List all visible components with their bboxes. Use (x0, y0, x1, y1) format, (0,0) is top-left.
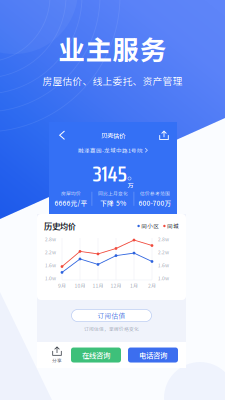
staticText: 9月 (58, 282, 66, 289)
staticText: 12月 (110, 282, 121, 289)
button[interactable]: 分享 (43, 344, 71, 366)
button[interactable]: Back (53, 128, 71, 142)
staticText: 贝壳估价 (101, 131, 125, 140)
staticText: 10月 (74, 282, 85, 289)
staticText: 1.6w (45, 261, 56, 269)
staticText: 同小区 (141, 222, 159, 230)
staticText: 房屋均价 (61, 190, 81, 197)
button[interactable]: 融泽嘉园-龙域中路1号院 (78, 146, 148, 154)
staticText: 6666元/平 (54, 198, 87, 208)
staticText: 估价参考范围 (140, 190, 170, 197)
staticText: 历史均价 (44, 220, 76, 232)
staticText: 2.8w (45, 235, 56, 243)
staticText: 分享 (52, 357, 62, 364)
staticText: 2.8w (158, 235, 169, 243)
staticText: 房屋估价、线上委托、资产管理 (42, 74, 182, 88)
staticText: 在线咨询 (82, 350, 110, 360)
staticText: 业主服务 (58, 29, 166, 68)
staticText: 11月 (92, 282, 103, 289)
staticText: 融泽嘉园-龙域中路1号院 (78, 146, 143, 154)
staticText: 600-700万 (138, 198, 171, 208)
button[interactable]: 电话咨询 (128, 347, 178, 362)
staticText: 2.2w (45, 248, 56, 256)
staticText: 电话咨询 (139, 350, 167, 360)
button[interactable]: 订阅估值 (71, 309, 151, 321)
staticText: 订阅估值 (97, 311, 125, 320)
staticText: 1月 (130, 282, 138, 289)
staticText: 2.2w (158, 248, 169, 256)
button[interactable]: 在线咨询 (71, 347, 121, 362)
staticText: 3145 (92, 157, 126, 191)
staticText: 万 (127, 181, 133, 190)
staticText: 同城 (167, 222, 179, 230)
staticText: 下降 5% (100, 198, 126, 208)
staticText: 同比上月变化 (98, 190, 128, 197)
staticText: 订阅估值，掌握价格变化 (84, 325, 139, 332)
button[interactable]: Share (155, 128, 173, 142)
staticText: 1.0w (45, 274, 56, 282)
staticText: 1.0w (158, 274, 169, 282)
staticText: 2月 (148, 282, 156, 289)
staticText: 1.6w (158, 261, 169, 269)
